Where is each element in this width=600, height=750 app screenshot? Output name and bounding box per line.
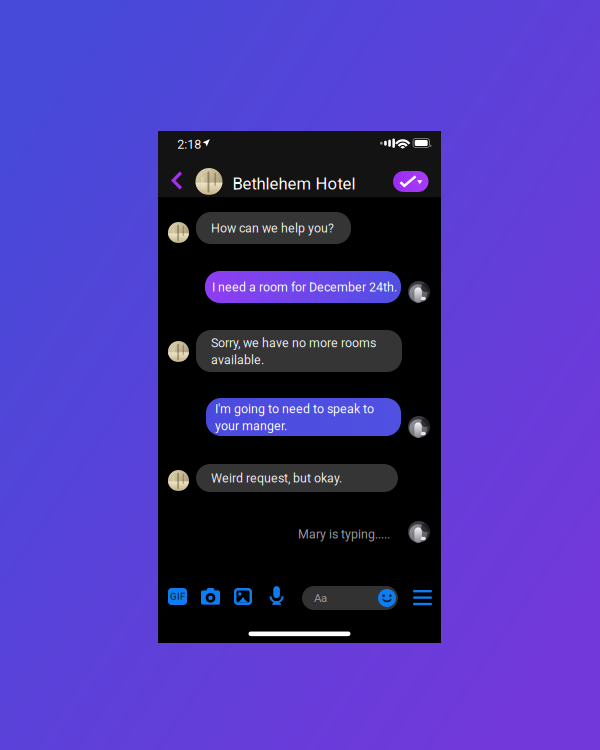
staticText: GIF [170, 591, 185, 602]
button[interactable]: Camera [201, 588, 220, 605]
staticText: I need a room for December 24th. [212, 280, 397, 294]
staticText: I'm going to need to speak to [215, 402, 374, 416]
button[interactable]: Voice message [270, 586, 283, 605]
staticText: your manger. [215, 419, 287, 433]
staticText: Bethlehem Hotel [232, 174, 355, 193]
staticText: How can we help you? [211, 221, 334, 235]
staticText: Mary is typing..... [298, 527, 390, 541]
button[interactable]: Active status [393, 171, 428, 192]
staticText: Weird request, but okay. [211, 471, 342, 485]
button[interactable]: Photos [234, 588, 252, 605]
button[interactable]: Aa [302, 586, 398, 610]
button[interactable]: GIF [168, 588, 187, 605]
staticText: 2:18 [177, 137, 201, 152]
staticText: Aa [314, 591, 327, 605]
button[interactable]: Back [171, 171, 182, 190]
staticText: available. [211, 353, 264, 367]
staticText: Sorry, we have no more rooms [211, 336, 376, 350]
button[interactable]: Emoji [378, 589, 396, 607]
button[interactable]: More options [413, 590, 432, 605]
